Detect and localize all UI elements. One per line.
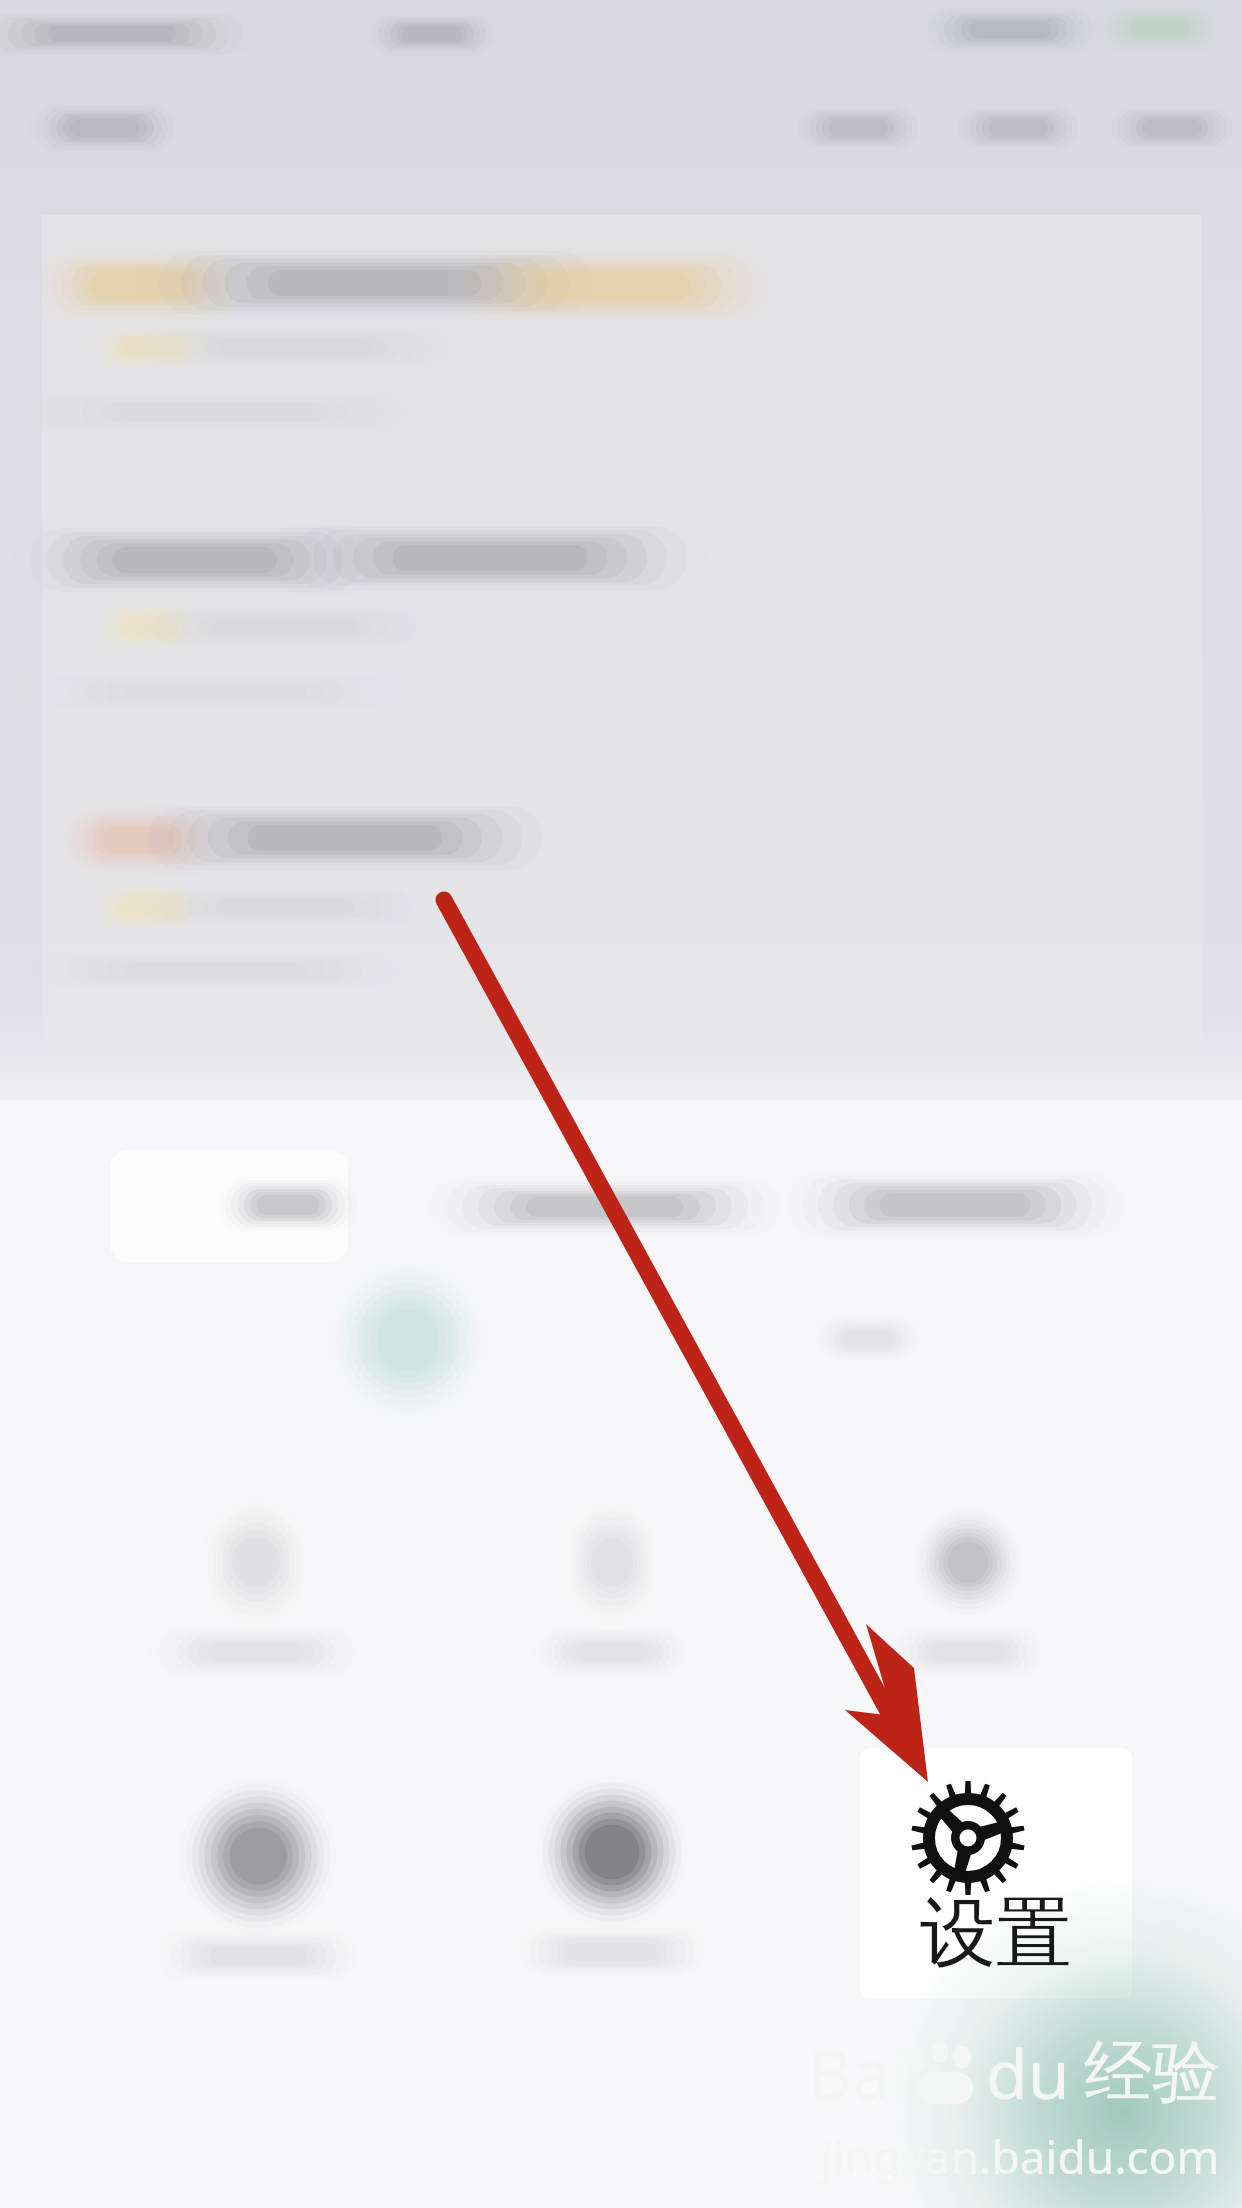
button[interactable]: 设置 xyxy=(860,1748,1132,1998)
staticText: 设置 xyxy=(920,1886,1072,1982)
staticText: 经验 xyxy=(1084,2030,1220,2116)
staticText: jingyan.baidu.com xyxy=(821,2125,1220,2188)
staticText: du xyxy=(986,2026,1070,2119)
